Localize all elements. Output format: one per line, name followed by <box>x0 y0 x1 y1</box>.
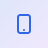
button[interactable]: iPhone <box>18 15 30 33</box>
